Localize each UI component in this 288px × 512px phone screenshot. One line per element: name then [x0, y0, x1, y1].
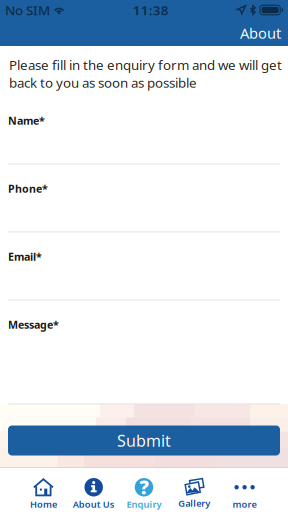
- button[interactable]: Submit: [8, 425, 280, 455]
- staticText: ?: [139, 475, 148, 500]
- staticText: About Us: [73, 498, 115, 510]
- button[interactable]: Home: [18, 468, 68, 512]
- staticText: more: [233, 498, 257, 510]
- staticText: Submit: [117, 430, 171, 451]
- button[interactable]: more: [219, 468, 270, 512]
- button[interactable]: About: [233, 20, 288, 46]
- staticText: Message*: [8, 317, 59, 332]
- staticText: Gallery: [178, 497, 210, 509]
- button[interactable]: Gallery: [169, 468, 219, 512]
- staticText: Email*: [8, 249, 42, 264]
- staticText: No SIM: [5, 1, 50, 19]
- staticText: 11:38: [133, 1, 169, 19]
- staticText: Please fill in the enquiry form and we w…: [9, 56, 282, 91]
- staticText: Enquiry: [126, 498, 161, 510]
- staticText: Home: [30, 498, 57, 510]
- staticText: Phone*: [8, 181, 48, 196]
- staticText: Name*: [8, 113, 45, 128]
- button[interactable]: ?: [119, 468, 169, 512]
- staticText: About: [240, 23, 281, 43]
- button[interactable]: About Us: [68, 468, 119, 512]
